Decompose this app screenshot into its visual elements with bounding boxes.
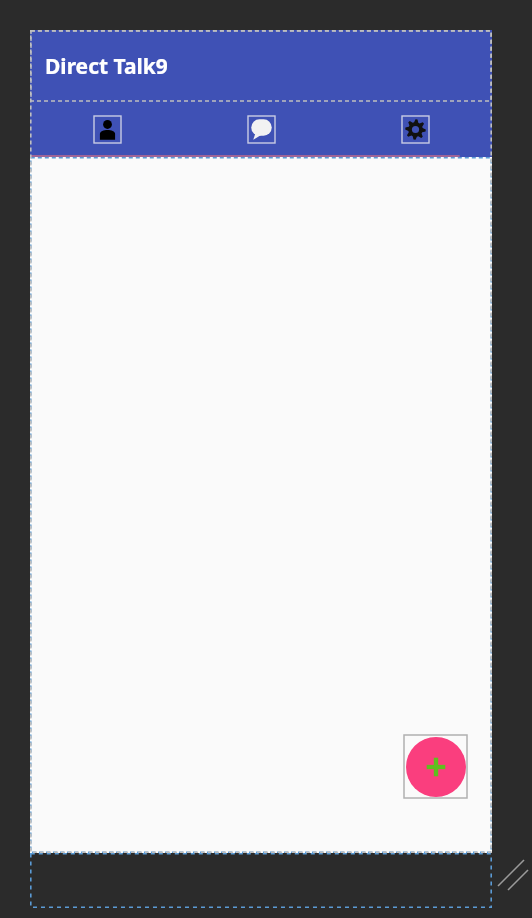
button[interactable]: Settings xyxy=(338,102,492,157)
button[interactable]: Contacts xyxy=(30,102,184,157)
staticText: Direct Talk9 xyxy=(45,52,168,81)
button[interactable]: Chats xyxy=(184,102,338,157)
button[interactable]: Add xyxy=(406,737,466,797)
